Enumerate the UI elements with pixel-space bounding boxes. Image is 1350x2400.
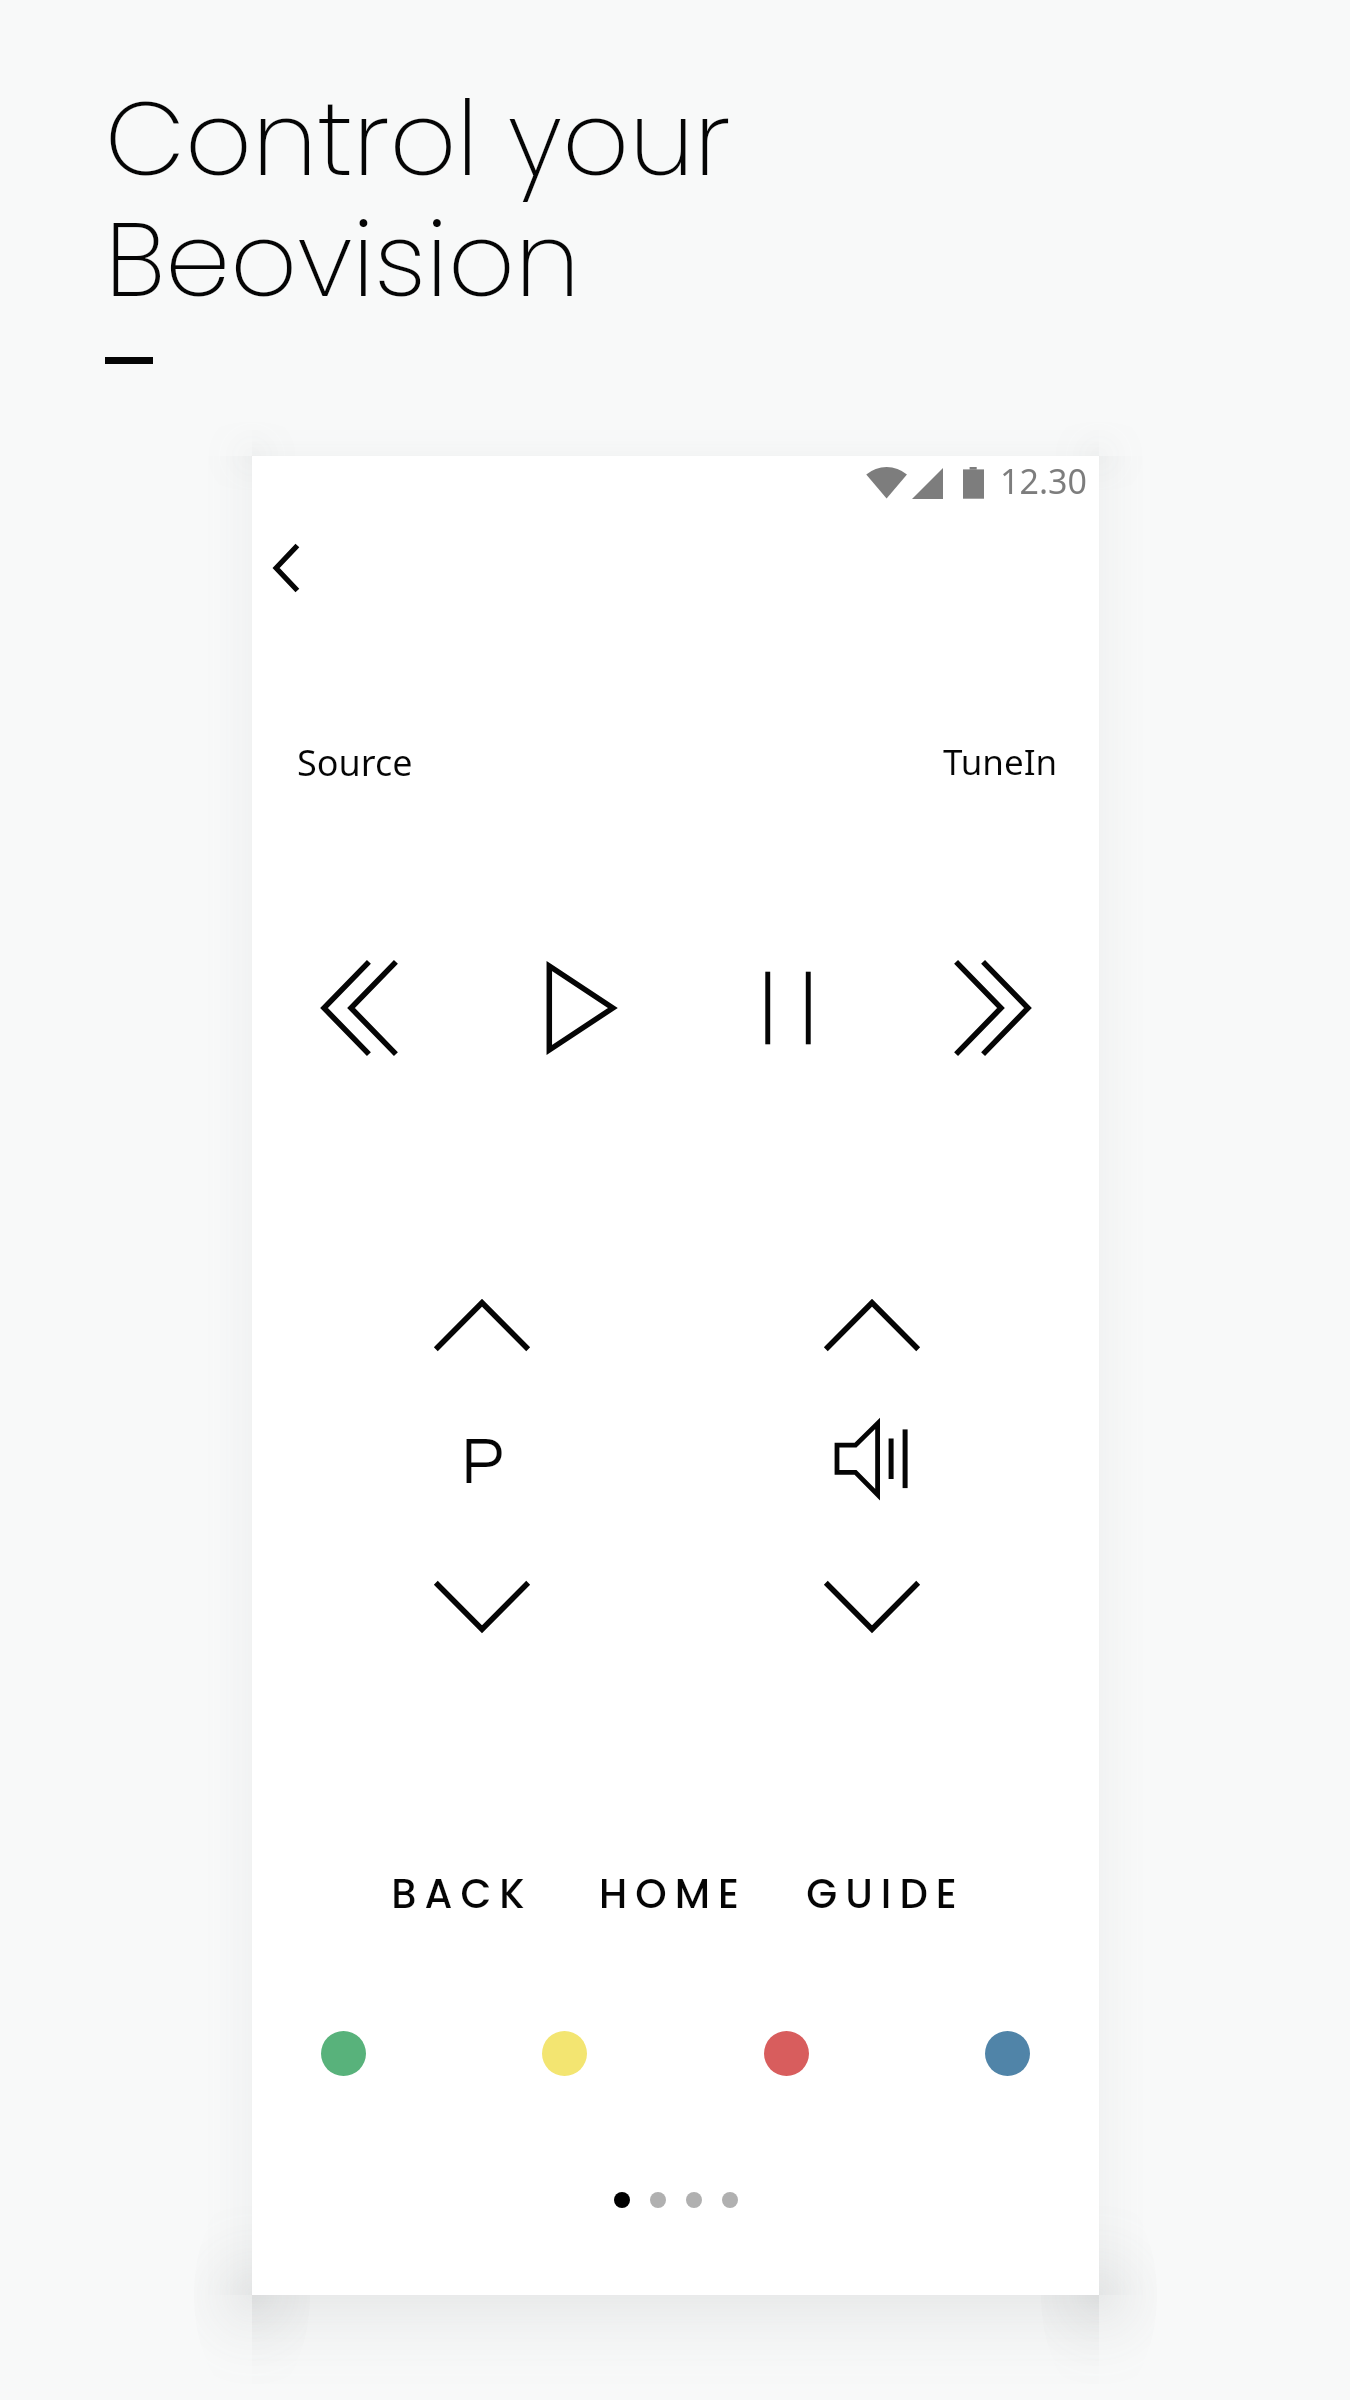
button[interactable]: Blue — [985, 2031, 1030, 2076]
button[interactable]: Back — [236, 519, 334, 617]
button[interactable]: Green — [321, 2031, 366, 2076]
staticText: BACK — [391, 1866, 533, 1922]
staticText: TuneIn — [943, 738, 1058, 786]
staticText: Source — [297, 738, 413, 787]
button[interactable]: Programme — [435, 1417, 529, 1507]
button[interactable]: Play — [526, 953, 636, 1063]
staticText: GUIDE — [806, 1866, 965, 1922]
button[interactable]: Pause — [733, 953, 843, 1063]
staticText: Control your Beovision — [105, 66, 731, 332]
button[interactable]: Volume down — [825, 1560, 919, 1654]
button[interactable]: Channel down — [435, 1560, 529, 1654]
button[interactable]: Yellow — [542, 2031, 587, 2076]
button[interactable]: GUIDE — [780, 1863, 990, 1925]
button[interactable]: Volume up — [825, 1278, 919, 1372]
button[interactable]: HOME — [568, 1863, 778, 1925]
button[interactable]: BACK — [357, 1863, 567, 1925]
button[interactable]: Next — [938, 953, 1048, 1063]
button[interactable]: Red — [764, 2031, 809, 2076]
staticText: HOME — [599, 1866, 747, 1922]
staticText: 12.30 — [1000, 458, 1087, 504]
button[interactable]: Mute — [816, 1404, 926, 1514]
button[interactable]: Previous — [304, 953, 414, 1063]
staticText: P — [461, 1428, 504, 1497]
button[interactable]: Source — [252, 733, 1099, 791]
button[interactable]: Channel up — [435, 1278, 529, 1372]
